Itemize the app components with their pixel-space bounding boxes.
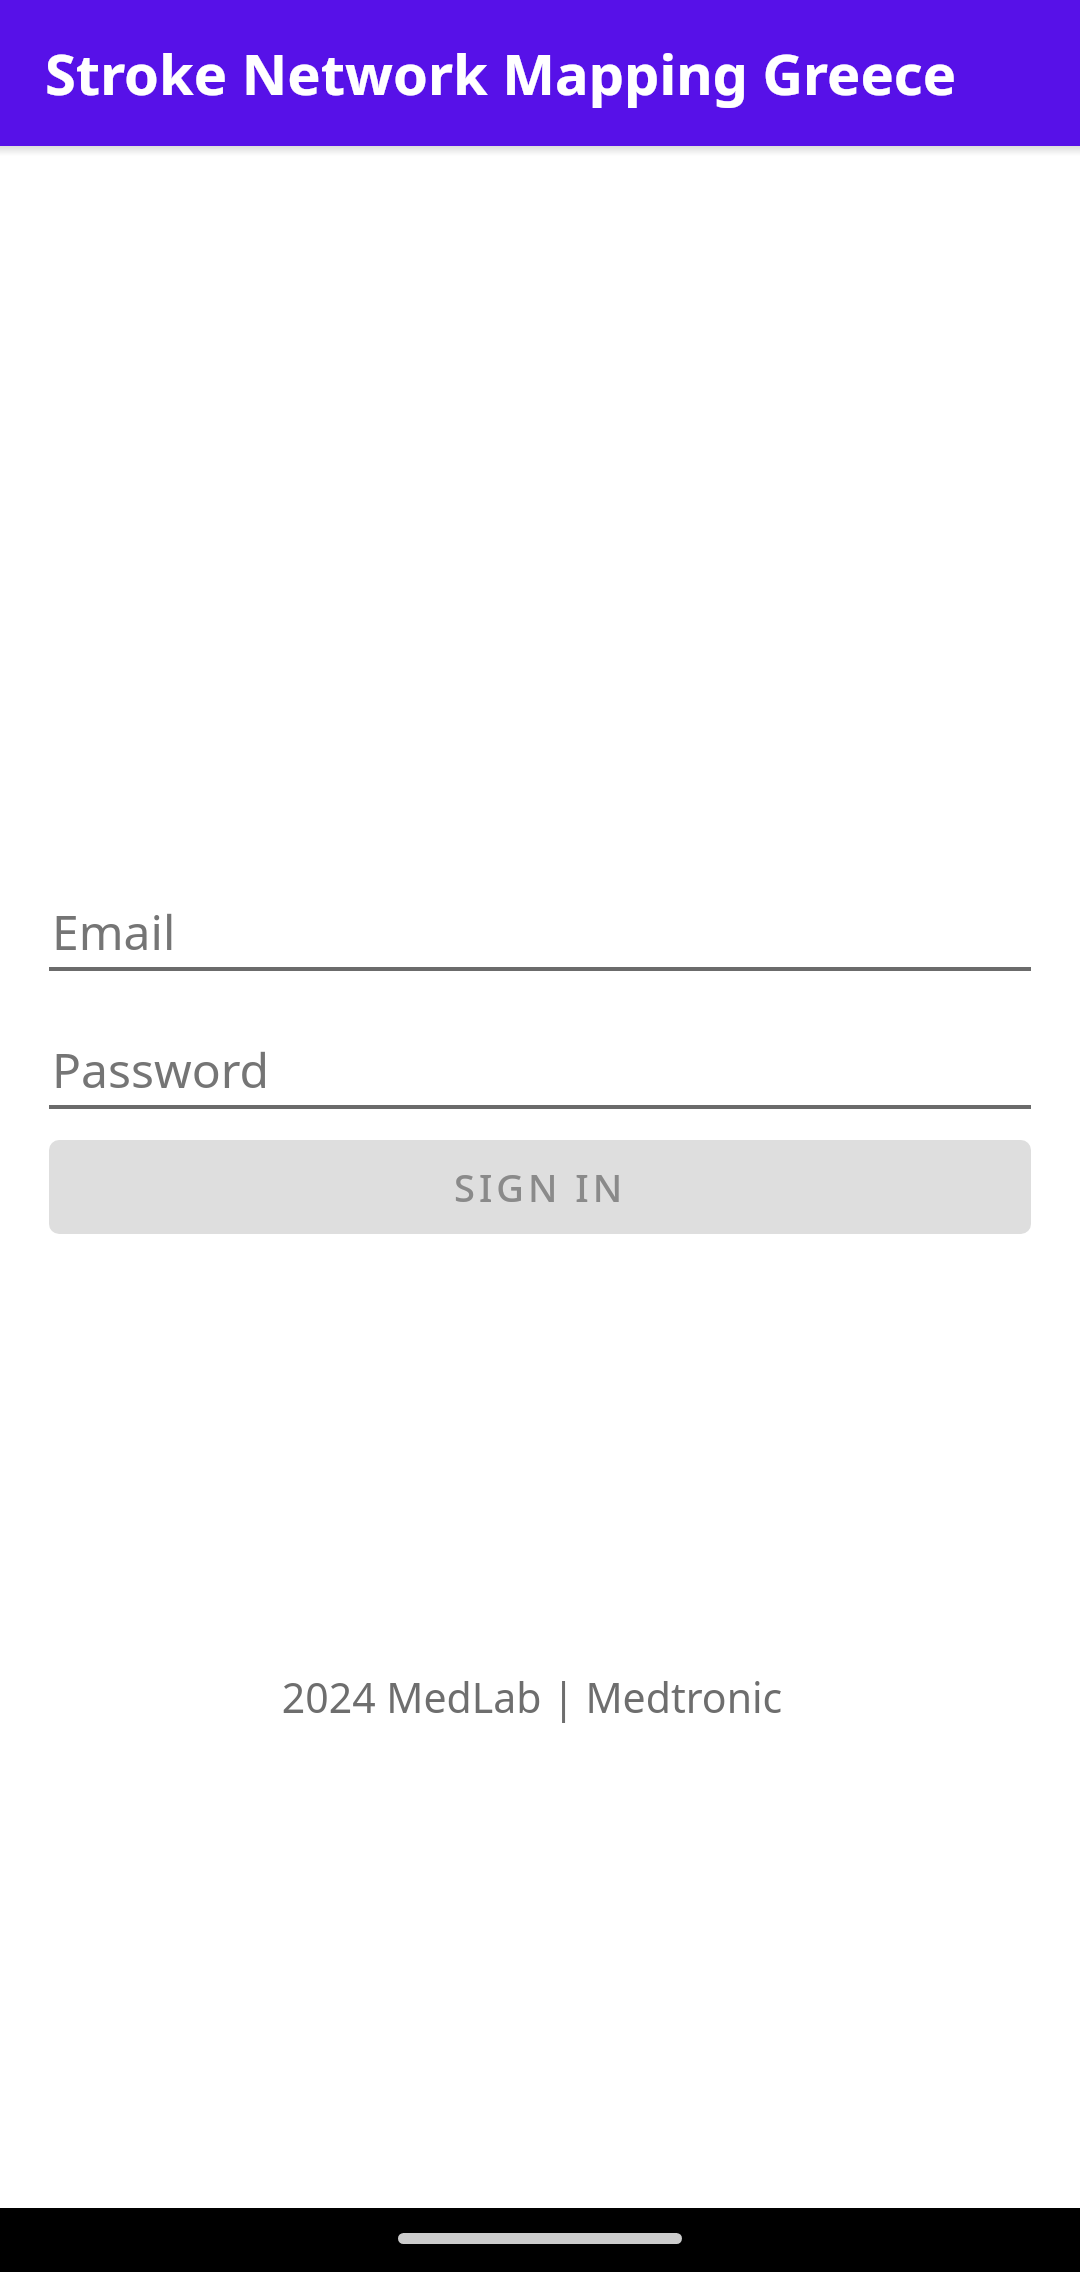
button[interactable]: Password	[49, 1029, 1031, 1109]
button[interactable]: SIGN IN	[49, 1140, 1031, 1234]
staticText: 2024 MedLab | Medtronic	[0, 1669, 1072, 1725]
button[interactable]: Email	[49, 891, 1031, 971]
staticText: Email	[52, 899, 176, 964]
staticText: SIGN IN	[454, 1161, 627, 1213]
other: Home gesture handle	[398, 2233, 682, 2244]
staticText: Stroke Network Mapping Greece	[45, 35, 957, 111]
staticText: Password	[52, 1037, 270, 1102]
